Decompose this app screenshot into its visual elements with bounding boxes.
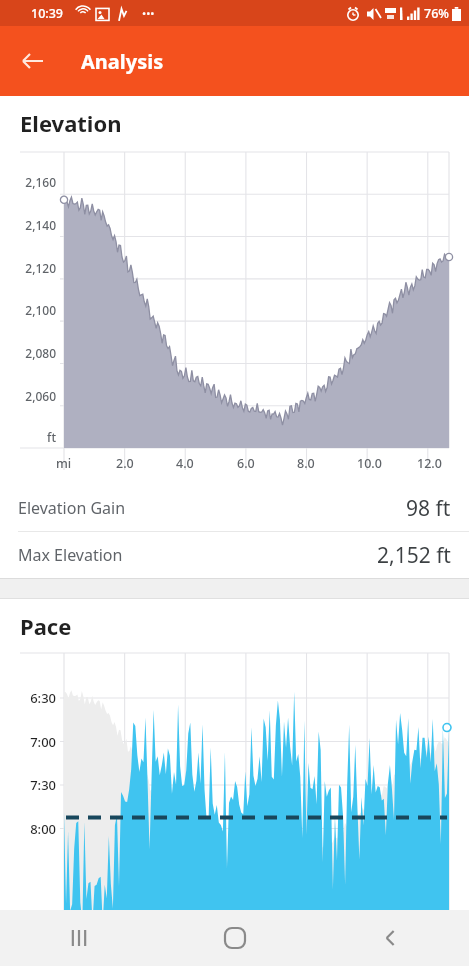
staticText: Analysis — [81, 48, 164, 75]
staticText: 2,060 — [14, 388, 56, 404]
staticText: 2,140 — [14, 217, 56, 233]
button[interactable]: Elevation Gain — [0, 485, 469, 531]
staticText: Elevation — [20, 108, 122, 138]
staticText: Max Elevation — [18, 544, 123, 566]
staticText: 2.0 — [116, 455, 150, 472]
staticText: 7:30 — [14, 776, 56, 794]
staticText: Elevation Gain — [18, 497, 126, 519]
staticText: ••• — [142, 6, 155, 21]
staticText: 2,100 — [14, 302, 56, 318]
staticText: mi — [56, 455, 90, 472]
staticText: 2,120 — [14, 260, 56, 276]
staticText: 76% — [424, 5, 449, 22]
staticText: 8.0 — [297, 455, 331, 472]
staticText: 6.0 — [237, 455, 271, 472]
staticText: ft — [14, 429, 56, 445]
button[interactable]: Max Elevation — [0, 532, 469, 578]
staticText: 6:30 — [14, 689, 56, 707]
staticText: Pace — [20, 611, 72, 641]
staticText: 8:00 — [14, 820, 56, 838]
button[interactable]: Back — [313, 910, 469, 966]
staticText: 2,080 — [14, 345, 56, 361]
staticText: 98 ft — [406, 494, 451, 523]
staticText: 10:39 — [31, 5, 64, 22]
staticText: 4.0 — [176, 455, 210, 472]
button[interactable]: Home — [157, 910, 313, 966]
staticText: 2,160 — [14, 174, 56, 190]
staticText: 12.0 — [417, 455, 451, 472]
button[interactable]: Back — [10, 38, 56, 84]
staticText: 7:00 — [14, 733, 56, 751]
staticText: 2,152 ft — [377, 541, 451, 570]
staticText: 10.0 — [357, 455, 391, 472]
button[interactable]: Recent apps — [0, 910, 157, 966]
